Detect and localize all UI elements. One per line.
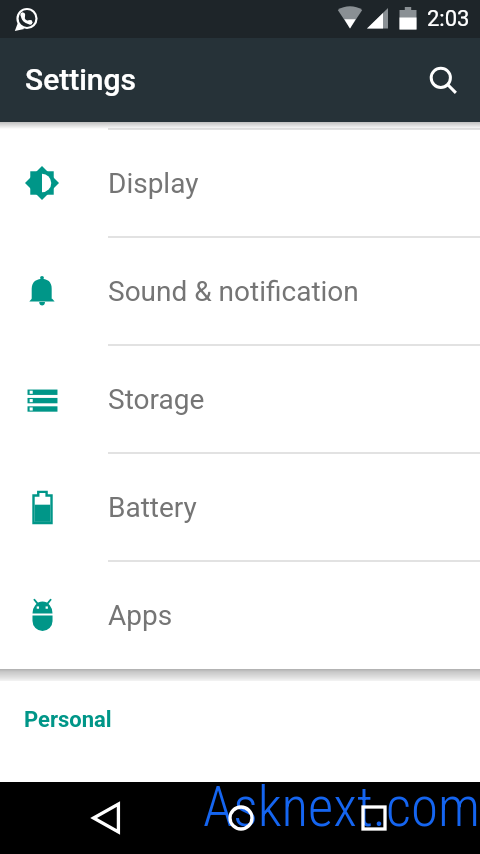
button[interactable]: Storage bbox=[0, 346, 480, 452]
staticText: Sound & notification bbox=[108, 275, 359, 308]
button[interactable]: Recent apps bbox=[344, 788, 404, 848]
button[interactable]: Display bbox=[0, 130, 480, 236]
staticText: 2:03 bbox=[427, 6, 470, 32]
staticText: Settings bbox=[25, 62, 137, 97]
staticText: Apps bbox=[108, 599, 173, 632]
button[interactable]: Home bbox=[211, 788, 271, 848]
staticText: Personal bbox=[24, 707, 112, 733]
staticText: Storage bbox=[108, 383, 205, 416]
button[interactable]: Back bbox=[76, 788, 136, 848]
staticText: Battery bbox=[108, 491, 197, 524]
button[interactable]: Sound & notification bbox=[0, 238, 480, 344]
button[interactable]: Apps bbox=[0, 562, 480, 668]
button[interactable]: Battery bbox=[0, 454, 480, 560]
staticText: Display bbox=[108, 167, 199, 200]
button[interactable]: Search bbox=[414, 51, 474, 111]
staticText: Asknext.com bbox=[203, 775, 480, 839]
